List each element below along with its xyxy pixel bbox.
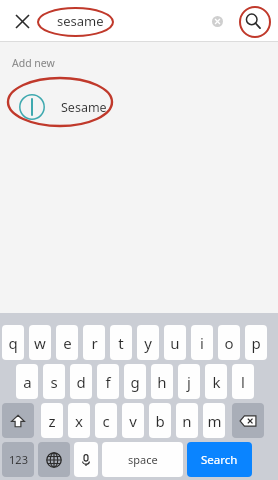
- button[interactable]: s: [43, 364, 65, 399]
- button[interactable]: c: [95, 403, 117, 438]
- button[interactable]: 123: [2, 442, 34, 477]
- staticText: space: [128, 452, 158, 467]
- button[interactable]: k: [205, 364, 227, 399]
- staticText: Search: [201, 452, 238, 468]
- button[interactable]: Change keyboard language: [38, 442, 70, 477]
- button[interactable]: x: [68, 403, 90, 438]
- staticText: b: [155, 411, 165, 431]
- button[interactable]: t: [110, 325, 132, 360]
- button[interactable]: r: [83, 325, 105, 360]
- staticText: p: [251, 333, 261, 353]
- button[interactable]: q: [2, 325, 24, 360]
- staticText: q: [8, 333, 18, 353]
- staticText: o: [224, 333, 234, 353]
- staticText: i: [200, 333, 204, 353]
- staticText: n: [182, 411, 192, 431]
- button[interactable]: v: [122, 403, 144, 438]
- button[interactable]: Clear query: [204, 8, 230, 34]
- button[interactable]: z: [41, 403, 63, 438]
- button[interactable]: i: [191, 325, 213, 360]
- button[interactable]: n: [176, 403, 198, 438]
- button[interactable]: m: [203, 403, 225, 438]
- staticText: Add new: [12, 56, 55, 70]
- staticText: a: [23, 372, 32, 392]
- button[interactable]: Close: [8, 7, 36, 35]
- button[interactable]: g: [124, 364, 146, 399]
- button[interactable]: w: [29, 325, 51, 360]
- button[interactable]: e: [56, 325, 78, 360]
- staticText: c: [102, 411, 110, 431]
- button[interactable]: u: [164, 325, 186, 360]
- staticText: j: [187, 372, 191, 392]
- staticText: w: [34, 333, 46, 353]
- staticText: v: [129, 411, 137, 431]
- staticText: h: [157, 372, 167, 392]
- staticText: k: [212, 372, 221, 392]
- button[interactable]: Backspace: [232, 403, 264, 438]
- button[interactable]: h: [151, 364, 173, 399]
- staticText: z: [48, 411, 56, 431]
- button[interactable]: Shift: [2, 403, 34, 438]
- staticText: l: [241, 372, 245, 392]
- staticText: x: [75, 411, 83, 431]
- button[interactable]: Voice input: [74, 442, 98, 477]
- button[interactable]: Search: [238, 6, 268, 36]
- button[interactable]: l: [232, 364, 254, 399]
- staticText: g: [130, 372, 140, 392]
- staticText: sesame: [57, 12, 104, 30]
- button[interactable]: p: [245, 325, 267, 360]
- staticText: r: [91, 333, 98, 353]
- button[interactable]: b: [149, 403, 171, 438]
- staticText: f: [105, 372, 111, 392]
- staticText: u: [170, 333, 180, 353]
- button[interactable]: y: [137, 325, 159, 360]
- staticText: 123: [9, 452, 28, 467]
- button[interactable]: space: [102, 442, 183, 477]
- button[interactable]: d: [70, 364, 92, 399]
- staticText: m: [207, 411, 222, 431]
- button[interactable]: o: [218, 325, 240, 360]
- staticText: s: [50, 372, 58, 392]
- staticText: y: [144, 333, 152, 353]
- button[interactable]: Search: [187, 442, 252, 477]
- staticText: Sesame: [61, 99, 107, 116]
- staticText: e: [63, 333, 72, 353]
- button[interactable]: f: [97, 364, 119, 399]
- button[interactable]: j: [178, 364, 200, 399]
- button[interactable]: Sesame: [0, 84, 278, 130]
- staticText: d: [76, 372, 86, 392]
- staticText: t: [118, 333, 124, 353]
- button[interactable]: a: [16, 364, 38, 399]
